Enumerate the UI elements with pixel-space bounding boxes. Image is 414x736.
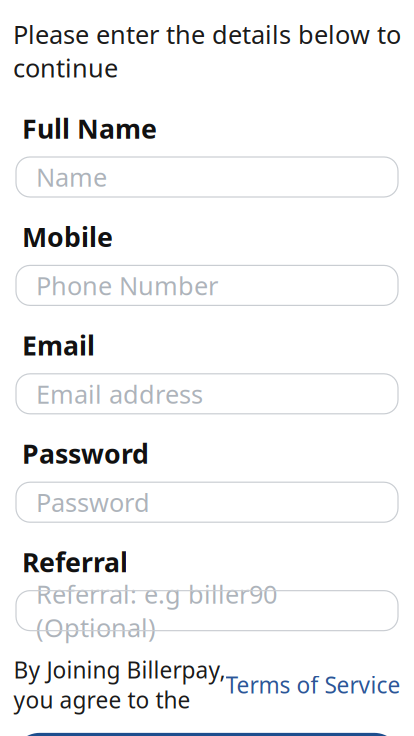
button[interactable]: Email address [16,374,398,414]
staticText: Referral: e.g biller90 (Optional) [36,577,277,644]
button[interactable]: Sign Up [12,733,402,736]
staticText: Email address [36,377,203,411]
staticText: Password [36,485,150,519]
staticText: Name [36,160,107,194]
staticText: Please enter the details below to contin… [13,17,401,85]
staticText: Phone Number [36,269,218,302]
staticText: Password [22,436,149,471]
staticText: Referral [22,544,128,580]
staticText: Email [22,327,95,363]
button[interactable]: Terms of Service [225,670,400,700]
staticText: By Joining Billerpay, you agree to the [13,655,225,715]
staticText: Terms of Service [225,670,400,700]
button[interactable]: Referral: e.g biller90 (Optional) [16,591,398,631]
staticText: Mobile [22,219,113,254]
button[interactable]: Password [16,482,398,522]
button[interactable]: Name [16,157,398,197]
staticText: Full Name [22,111,157,146]
button[interactable]: Phone Number [16,265,398,305]
